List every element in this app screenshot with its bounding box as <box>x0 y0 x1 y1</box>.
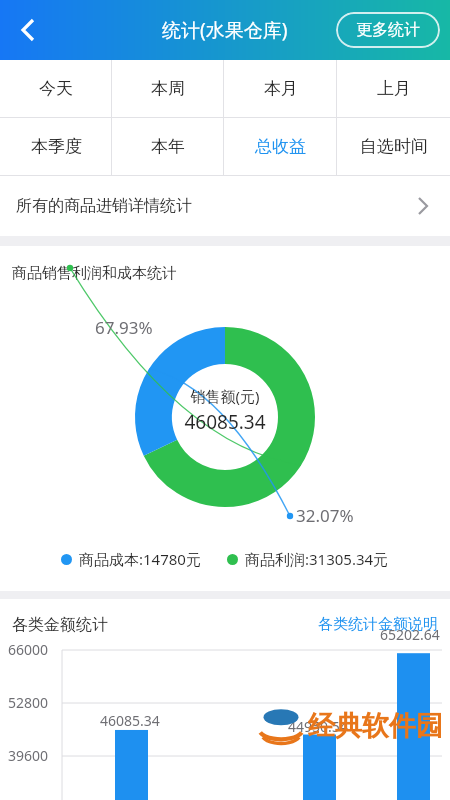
staticText: 34682.9 <box>58 797 110 800</box>
staticText: 46085.34 <box>100 711 160 730</box>
staticText: 统计(水果仓库) <box>162 17 288 43</box>
staticText: 上月 <box>377 78 411 99</box>
staticText: 商品销售利润和成本统计 <box>12 264 177 283</box>
button[interactable]: 自选时间 <box>337 118 450 175</box>
staticText: 总收益 <box>255 136 306 157</box>
staticText: 所有的商品进销详情统计 <box>16 196 192 216</box>
staticText: 商品成本:14780元 <box>79 549 201 569</box>
staticText: 各类金额统计 <box>12 615 108 635</box>
staticText: 52800 <box>8 693 49 712</box>
button[interactable]: 本月 <box>224 60 337 117</box>
staticText: 商品利润:31305.34元 <box>245 549 389 569</box>
staticText: 本季度 <box>31 136 82 157</box>
staticText: 各类统计金额说明 <box>318 615 438 634</box>
staticText: 更多统计 <box>356 20 420 40</box>
staticText: 66000 <box>8 640 49 659</box>
staticText: 本周 <box>151 78 185 99</box>
staticText: 自选时间 <box>360 136 428 157</box>
staticText: 本月 <box>264 78 298 99</box>
staticText: 经典软件园 <box>308 709 443 743</box>
button[interactable]: Back <box>6 8 50 52</box>
button[interactable]: 本周 <box>112 60 224 117</box>
button[interactable]: 总收益 <box>224 118 337 175</box>
button[interactable]: 今天 <box>0 60 112 117</box>
staticText: 今天 <box>39 78 73 99</box>
button[interactable]: 更多统计 <box>336 12 440 48</box>
button[interactable]: 本季度 <box>0 118 112 175</box>
staticText: 本年 <box>151 136 185 157</box>
staticText: 39600 <box>8 746 49 765</box>
staticText: 销售额(元) <box>190 386 260 406</box>
staticText: 44950.54 <box>288 717 348 736</box>
button[interactable]: 各类统计金额说明 <box>314 611 442 638</box>
button[interactable]: 本年 <box>112 118 224 175</box>
staticText: 65202.64 <box>380 625 440 644</box>
staticText: 46085.34 <box>184 409 266 435</box>
staticText: 67.93% <box>95 316 153 339</box>
staticText: 32.07% <box>296 504 354 527</box>
button[interactable]: 所有的商品进销详情统计 <box>0 176 450 236</box>
button[interactable]: 上月 <box>337 60 450 117</box>
